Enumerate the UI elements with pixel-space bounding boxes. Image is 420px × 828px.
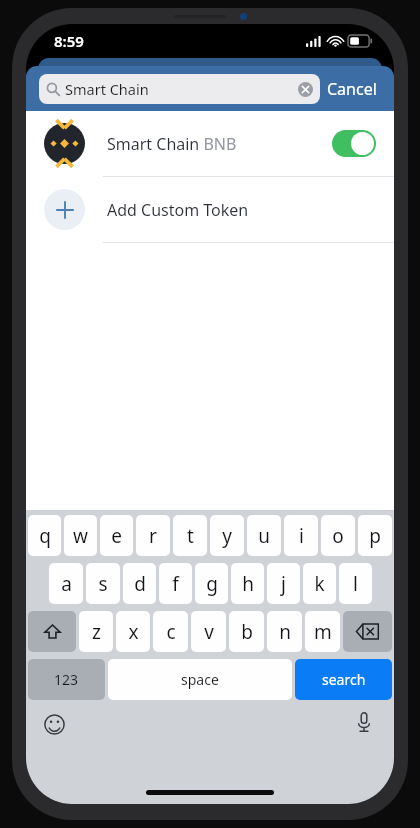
- staticText: t: [187, 523, 194, 549]
- staticText: o: [332, 523, 344, 549]
- button[interactable]: h: [231, 563, 264, 604]
- button[interactable]: Toggle Smart Chain: [332, 130, 376, 157]
- staticText: e: [111, 523, 122, 549]
- staticText: 8:59: [54, 31, 84, 51]
- button[interactable]: Add Custom Token: [26, 177, 394, 242]
- button[interactable]: q: [28, 515, 61, 556]
- button[interactable]: t: [173, 515, 207, 556]
- button[interactable]: r: [136, 515, 170, 556]
- staticText: m: [314, 619, 332, 645]
- button[interactable]: g: [195, 563, 228, 604]
- button[interactable]: j: [267, 563, 300, 604]
- button[interactable]: f: [159, 563, 192, 604]
- button[interactable]: s: [86, 563, 120, 604]
- button[interactable]: search: [295, 659, 392, 700]
- staticText: s: [98, 571, 108, 597]
- staticText: 123: [54, 670, 79, 689]
- button[interactable]: c: [153, 611, 188, 652]
- button[interactable]: b: [229, 611, 264, 652]
- staticText: Smart Chain BNB: [107, 133, 237, 155]
- button[interactable]: Shift: [28, 611, 76, 652]
- staticText: r: [149, 523, 157, 549]
- staticText: f: [172, 571, 179, 597]
- staticText: space: [181, 670, 219, 689]
- button[interactable]: Smart Chain: [39, 74, 320, 104]
- staticText: g: [206, 571, 218, 597]
- button[interactable]: p: [358, 515, 392, 556]
- staticText: u: [258, 523, 270, 549]
- button[interactable]: 123: [28, 659, 105, 700]
- button[interactable]: Backspace: [343, 611, 392, 652]
- button[interactable]: y: [210, 515, 244, 556]
- staticText: x: [128, 619, 139, 645]
- staticText: p: [369, 523, 381, 549]
- staticText: k: [314, 571, 325, 597]
- staticText: Add Custom Token: [107, 199, 249, 221]
- staticText: h: [242, 571, 254, 597]
- staticText: n: [279, 619, 291, 645]
- staticText: d: [134, 571, 146, 597]
- button[interactable]: l: [339, 563, 372, 604]
- button[interactable]: d: [123, 563, 156, 604]
- staticText: b: [241, 619, 253, 645]
- staticText: c: [166, 619, 176, 645]
- button[interactable]: v: [191, 611, 226, 652]
- button[interactable]: x: [116, 611, 150, 652]
- staticText: w: [73, 523, 88, 549]
- staticText: l: [353, 571, 358, 597]
- staticText: y: [222, 523, 232, 549]
- button[interactable]: u: [247, 515, 281, 556]
- button[interactable]: Smart Chain BNB: [26, 111, 394, 176]
- staticText: search: [322, 670, 366, 689]
- staticText: a: [61, 571, 72, 597]
- button[interactable]: k: [303, 563, 336, 604]
- button[interactable]: e: [100, 515, 133, 556]
- button[interactable]: i: [284, 515, 318, 556]
- staticText: Smart Chain: [65, 79, 149, 99]
- staticText: z: [92, 619, 101, 645]
- button[interactable]: Cancel: [320, 74, 384, 104]
- staticText: v: [204, 619, 214, 645]
- staticText: Cancel: [327, 78, 377, 100]
- button[interactable]: Clear search: [297, 81, 313, 97]
- button[interactable]: space: [108, 659, 292, 700]
- button[interactable]: m: [305, 611, 340, 652]
- button[interactable]: o: [321, 515, 355, 556]
- button[interactable]: a: [49, 563, 83, 604]
- staticText: i: [299, 523, 304, 549]
- staticText: q: [39, 523, 51, 549]
- button[interactable]: n: [267, 611, 302, 652]
- staticText: j: [281, 571, 286, 597]
- button[interactable]: w: [64, 515, 97, 556]
- button[interactable]: z: [79, 611, 113, 652]
- button[interactable]: Emoji keyboard: [40, 710, 68, 738]
- button[interactable]: Dictation: [350, 708, 378, 736]
